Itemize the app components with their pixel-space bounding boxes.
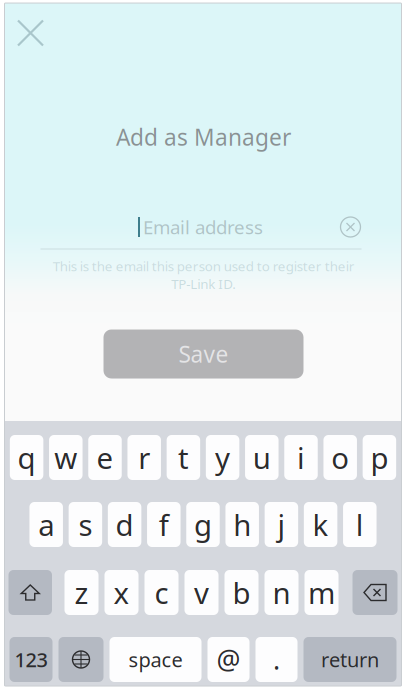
staticText: q	[18, 438, 36, 477]
staticText: n	[272, 573, 290, 612]
button[interactable]: n	[264, 570, 298, 615]
staticText: b	[232, 573, 250, 612]
button[interactable]: Next keyboard	[58, 637, 103, 682]
button[interactable]: Delete	[352, 570, 397, 615]
button[interactable]: Close	[18, 20, 43, 45]
staticText: a	[38, 505, 54, 544]
button[interactable]: c	[144, 570, 178, 615]
staticText: s	[78, 505, 92, 544]
staticText: g	[194, 505, 212, 544]
staticText: @	[216, 642, 240, 677]
button[interactable]: x	[104, 570, 138, 615]
staticText: Add as Manager	[116, 122, 291, 152]
staticText: m	[308, 573, 335, 612]
button[interactable]: q	[10, 435, 43, 480]
staticText: This is the email this person used to re…	[52, 257, 354, 293]
staticText: .	[273, 642, 280, 677]
button[interactable]: k	[304, 502, 337, 547]
button[interactable]: u	[245, 435, 278, 480]
staticText: e	[96, 438, 113, 477]
button[interactable]: e	[88, 435, 122, 480]
button[interactable]: h	[225, 502, 259, 547]
button[interactable]: 123	[9, 637, 52, 682]
staticText: f	[159, 505, 169, 544]
staticText: c	[154, 573, 168, 612]
staticText: y	[215, 438, 230, 477]
button[interactable]: w	[49, 435, 82, 480]
staticText: h	[233, 505, 251, 544]
button[interactable]: return	[303, 637, 396, 682]
staticText: v	[194, 573, 209, 612]
button[interactable]: .	[255, 637, 297, 682]
button[interactable]: d	[108, 502, 141, 547]
staticText: Email address	[143, 215, 263, 239]
button[interactable]: a	[29, 502, 63, 547]
button[interactable]: Shift	[8, 570, 52, 615]
staticText: Save	[178, 339, 228, 369]
staticText: x	[113, 573, 129, 612]
button[interactable]: o	[323, 435, 357, 480]
staticText: o	[331, 438, 349, 477]
button[interactable]: space	[109, 637, 201, 682]
button[interactable]: y	[206, 435, 239, 480]
button[interactable]: r	[127, 435, 161, 480]
staticText: w	[54, 438, 77, 477]
staticText: u	[253, 438, 271, 477]
button[interactable]: Clear text	[339, 216, 361, 238]
staticText: r	[138, 438, 150, 477]
button[interactable]: t	[167, 435, 200, 480]
button[interactable]: v	[184, 570, 218, 615]
button[interactable]: j	[265, 502, 298, 547]
button[interactable]: g	[186, 502, 220, 547]
button[interactable]: p	[363, 435, 396, 480]
staticText: space	[128, 646, 182, 673]
staticText: i	[297, 438, 305, 477]
staticText: return	[321, 646, 379, 673]
staticText: j	[277, 505, 285, 544]
staticText: d	[116, 505, 134, 544]
staticText: k	[313, 505, 329, 544]
button[interactable]: l	[343, 502, 376, 547]
button[interactable]: Save	[103, 329, 303, 378]
staticText: t	[178, 438, 189, 477]
button[interactable]: z	[64, 570, 98, 615]
staticText: z	[74, 573, 88, 612]
button[interactable]: i	[284, 435, 318, 480]
button[interactable]: m	[304, 570, 338, 615]
button[interactable]: s	[69, 502, 102, 547]
staticText: 123	[14, 646, 47, 673]
button[interactable]: b	[224, 570, 258, 615]
button[interactable]: @	[207, 637, 249, 682]
staticText: p	[370, 438, 388, 477]
button[interactable]: f	[147, 502, 181, 547]
staticText: l	[356, 505, 364, 544]
